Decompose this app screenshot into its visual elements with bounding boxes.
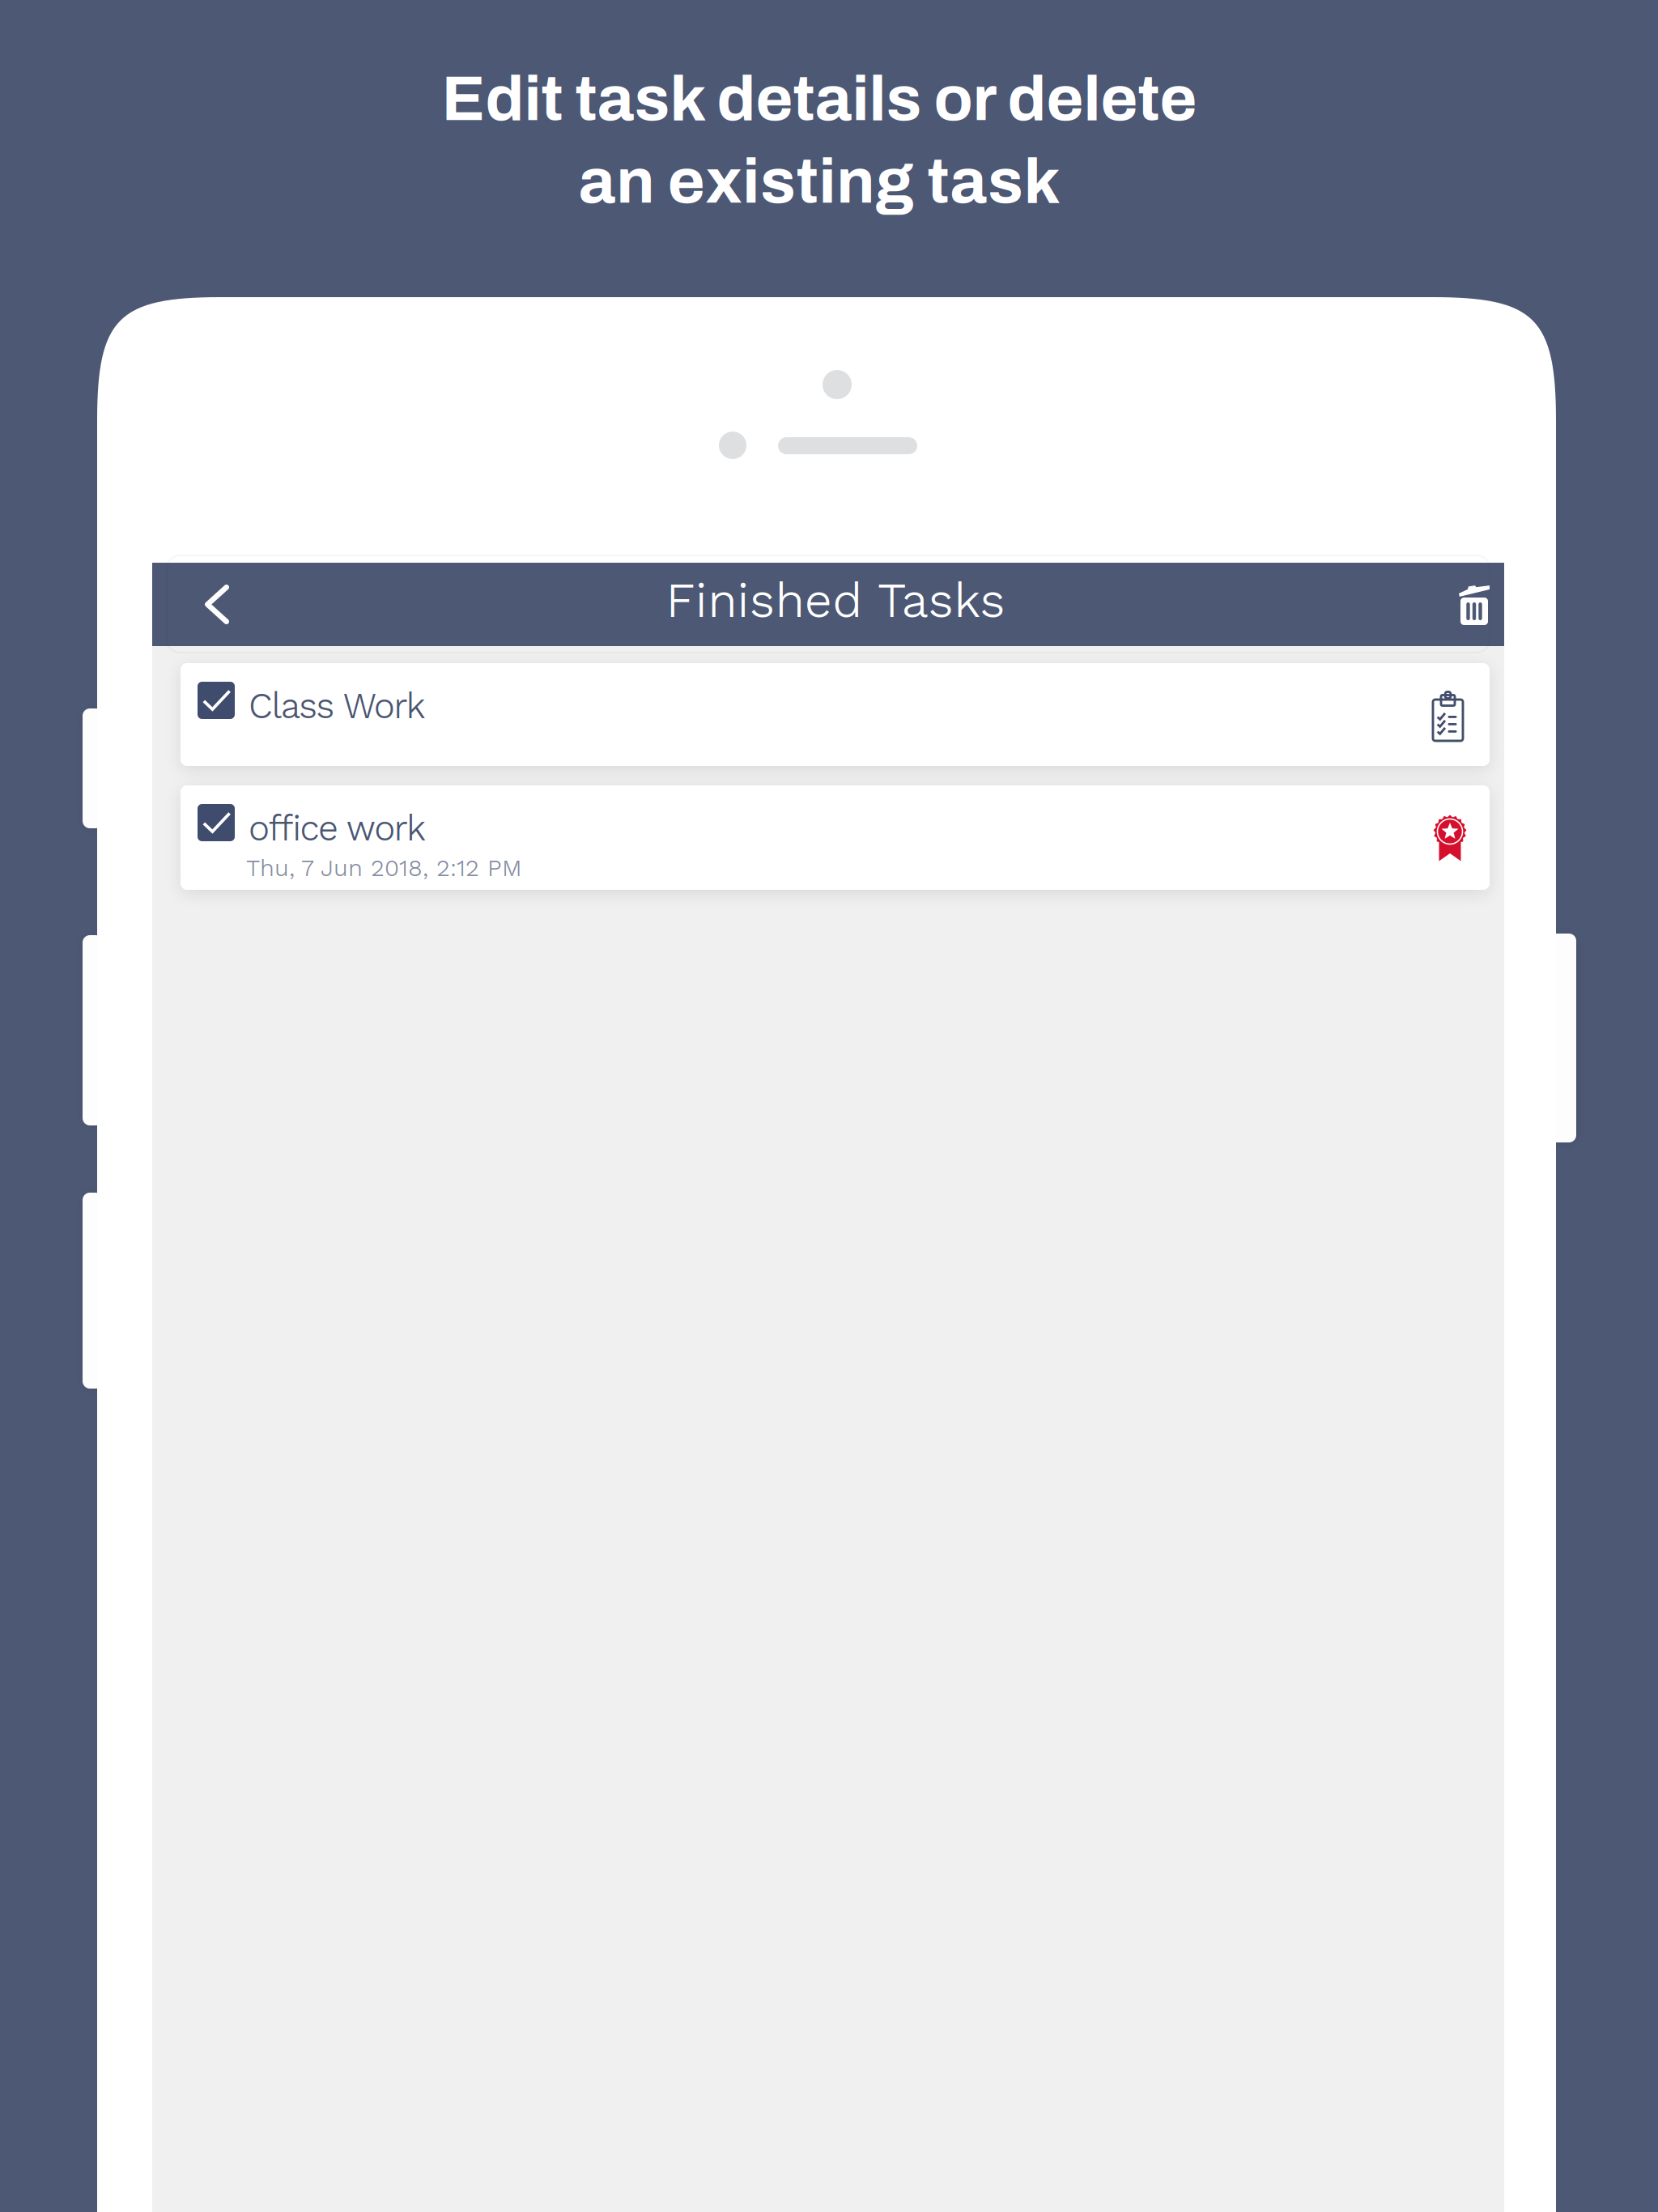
button[interactable]: Back <box>152 563 282 646</box>
button[interactable]: office work <box>181 785 1490 890</box>
staticText: Finished Tasks <box>666 572 1005 629</box>
staticText: office work <box>249 807 426 849</box>
button[interactable]: Delete all tasks <box>1429 559 1520 643</box>
button[interactable]: Class Work <box>181 663 1490 766</box>
staticText: Class Work <box>249 685 426 727</box>
staticText: Thu, 7 Jun 2018, 2:12 PM <box>246 854 522 882</box>
staticText: an existing task <box>578 147 1060 216</box>
staticText: Edit task details or delete <box>442 64 1197 133</box>
